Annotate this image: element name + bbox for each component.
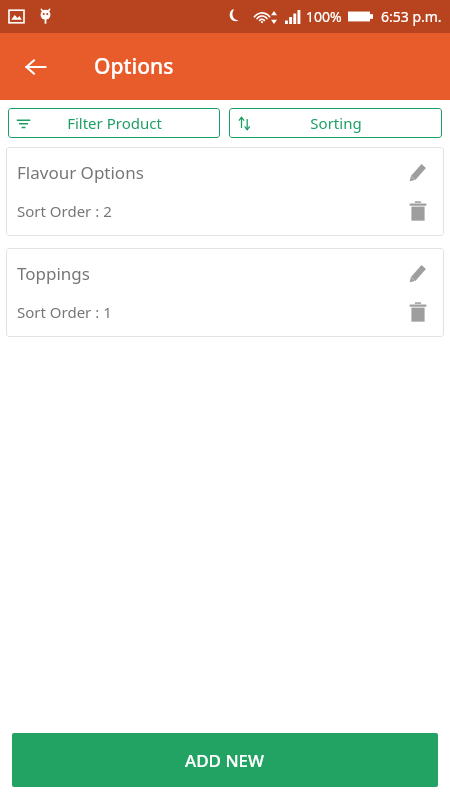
button[interactable]: Delete — [403, 196, 433, 226]
button[interactable]: ADD NEW — [12, 733, 438, 787]
staticText: Sorting — [310, 113, 362, 133]
button[interactable]: Edit — [403, 157, 433, 187]
staticText: Toppings — [17, 262, 403, 285]
button[interactable]: Flavour Options — [6, 147, 444, 236]
button[interactable]: Toppings — [6, 248, 444, 337]
staticText: ADD NEW — [185, 749, 265, 772]
staticText: Sort Order : 1 — [17, 302, 403, 322]
button[interactable]: Filter Product — [8, 108, 220, 138]
staticText: 100% — [306, 7, 342, 26]
button[interactable]: Delete — [403, 297, 433, 327]
button[interactable]: Edit — [403, 258, 433, 288]
staticText: 6:53 p.m. — [381, 7, 442, 26]
staticText: Flavour Options — [17, 161, 403, 184]
staticText: Filter Product — [67, 113, 162, 133]
staticText: Sort Order : 2 — [17, 201, 403, 221]
button[interactable]: Sorting — [229, 108, 442, 138]
staticText: Options — [94, 52, 174, 81]
button[interactable]: Back — [12, 43, 60, 91]
